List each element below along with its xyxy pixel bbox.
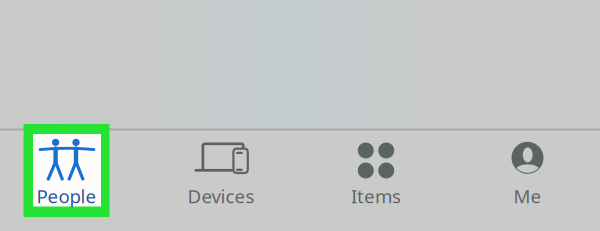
button[interactable]: Me xyxy=(450,131,600,217)
button[interactable]: Items xyxy=(299,131,453,217)
staticText: Devices xyxy=(187,184,254,208)
staticText: Me xyxy=(513,184,541,208)
button[interactable]: Devices xyxy=(144,131,298,217)
staticText: People xyxy=(36,184,96,208)
staticText: Items xyxy=(351,184,401,208)
button[interactable]: People xyxy=(0,131,143,217)
